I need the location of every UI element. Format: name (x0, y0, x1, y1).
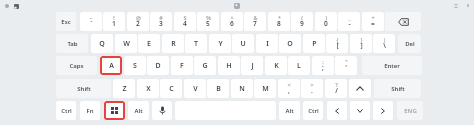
button[interactable]: & (244, 12, 266, 31)
staticText: 8 (277, 19, 281, 28)
button[interactable]: @ (127, 12, 149, 31)
staticText: | (383, 36, 386, 43)
button[interactable]: " (335, 56, 357, 75)
button[interactable]: V (184, 79, 206, 98)
staticText: Ctrl (61, 107, 72, 115)
button[interactable]: # (150, 12, 172, 31)
button[interactable]: ~ (80, 12, 102, 31)
button[interactable]: ? (325, 79, 347, 98)
button[interactable]: C (160, 79, 182, 98)
button[interactable]: Close (465, 3, 470, 8)
button[interactable]: W (115, 34, 137, 53)
button[interactable]: ) (315, 12, 337, 31)
staticText: E (147, 39, 151, 49)
button[interactable]: G (194, 56, 216, 75)
staticText: J (251, 61, 254, 71)
button[interactable]: D (147, 56, 169, 75)
button[interactable]: * (268, 12, 290, 31)
button[interactable]: U (232, 34, 254, 53)
button[interactable]: H (218, 56, 240, 75)
staticText: Z (122, 84, 127, 94)
staticText: N (239, 84, 245, 94)
button[interactable]: Tab (56, 34, 88, 53)
staticText: Del (405, 40, 415, 48)
button[interactable]: E (138, 34, 160, 53)
button[interactable]: Shift (56, 79, 111, 98)
button[interactable]: Caps (56, 56, 97, 75)
staticText: Q (99, 39, 105, 49)
button[interactable]: ( (291, 12, 313, 31)
button[interactable]: Menu (4, 3, 9, 8)
staticText: V (193, 84, 198, 94)
staticText: S (133, 61, 137, 71)
staticText: , (288, 86, 290, 95)
button[interactable]: L (288, 56, 310, 75)
button[interactable]: T (185, 34, 207, 53)
button[interactable]: Ctrl (56, 101, 76, 120)
button[interactable]: Del (398, 34, 421, 53)
button[interactable]: I (256, 34, 278, 53)
button[interactable]: Arrow up (349, 79, 371, 98)
staticText: R (171, 39, 176, 49)
button[interactable]: $ (174, 12, 196, 31)
button[interactable]: A (100, 56, 122, 75)
staticText: [ (336, 41, 339, 50)
button[interactable]: F (171, 56, 193, 75)
button[interactable]: Handle (233, 2, 240, 9)
staticText: Y (218, 39, 223, 49)
button[interactable]: P (303, 34, 325, 53)
button[interactable]: + (362, 12, 384, 31)
staticText: ! (113, 14, 115, 21)
button[interactable]: Windows (104, 101, 125, 120)
button[interactable]: M (254, 79, 276, 98)
button[interactable]: ^ (221, 12, 243, 31)
button[interactable]: { (326, 34, 348, 53)
button[interactable]: > (301, 79, 323, 98)
button[interactable]: } (350, 34, 372, 53)
button[interactable]: Arrow left (327, 101, 347, 120)
button[interactable]: < (278, 79, 300, 98)
button[interactable]: S (124, 56, 146, 75)
staticText: Fn (86, 107, 94, 115)
button[interactable]: K (265, 56, 287, 75)
staticText: } (360, 36, 363, 43)
staticText: 9 (300, 19, 304, 28)
staticText: \ (383, 41, 386, 50)
button[interactable]: Shift (374, 79, 421, 98)
button[interactable]: : (312, 56, 334, 75)
button[interactable]: Esc (56, 12, 76, 31)
button[interactable]: Resize (453, 3, 459, 9)
button[interactable]: ! (103, 12, 125, 31)
button[interactable]: % (197, 12, 219, 31)
button[interactable]: N (231, 79, 253, 98)
button[interactable]: R (162, 34, 184, 53)
button[interactable]: Arrow right (373, 101, 393, 120)
button[interactable]: Fn (80, 101, 100, 120)
button[interactable]: Arrow down (350, 101, 370, 120)
button[interactable]: B (207, 79, 229, 98)
button[interactable]: Alt (128, 101, 149, 120)
button[interactable]: _ (338, 12, 360, 31)
button[interactable]: O (279, 34, 301, 53)
button[interactable]: Alt (279, 101, 300, 120)
button[interactable]: ENG (397, 101, 423, 120)
button[interactable]: Q (91, 34, 113, 53)
button[interactable]: Voice input (152, 101, 172, 120)
button[interactable]: X (137, 79, 159, 98)
staticText: P (312, 39, 317, 49)
button[interactable]: Enter (362, 56, 422, 75)
staticText: L (297, 61, 301, 71)
button[interactable]: J (241, 56, 263, 75)
staticText: U (240, 39, 246, 49)
staticText: T (194, 39, 198, 49)
staticText: * (278, 14, 281, 21)
button[interactable]: Layout (13, 3, 19, 9)
button[interactable]: Y (209, 34, 231, 53)
button[interactable]: | (373, 34, 395, 53)
button[interactable]: Backspace (385, 12, 421, 31)
button[interactable]: Ctrl (303, 101, 323, 120)
button[interactable]: Z (113, 79, 135, 98)
staticText: 1 (112, 19, 116, 28)
staticText: Alt (285, 107, 294, 115)
